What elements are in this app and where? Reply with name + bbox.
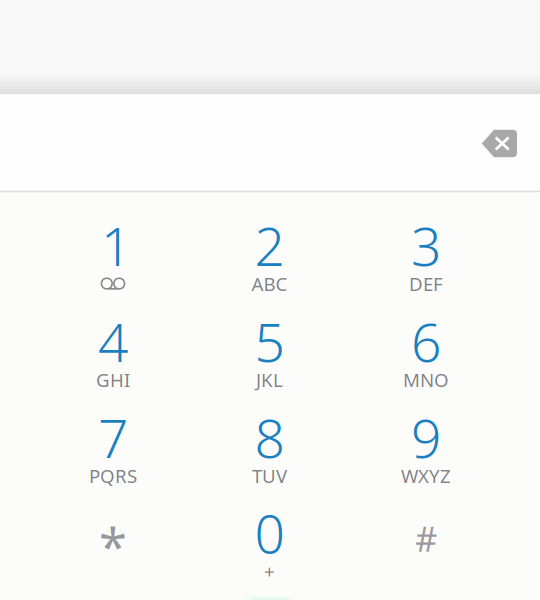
staticText: MNO bbox=[403, 367, 449, 392]
staticText: 8 bbox=[254, 402, 284, 473]
staticText: WXYZ bbox=[401, 463, 451, 488]
staticText: 3 bbox=[411, 210, 441, 281]
staticText: DEF bbox=[409, 271, 443, 296]
button[interactable]: Call bbox=[225, 592, 313, 600]
button[interactable]: 8 bbox=[191, 409, 347, 505]
staticText: JKL bbox=[256, 367, 283, 392]
staticText: GHI bbox=[96, 367, 130, 392]
button[interactable]: 4 bbox=[35, 313, 191, 409]
button[interactable]: 2 bbox=[191, 217, 347, 313]
button[interactable]: 1 bbox=[35, 217, 191, 313]
staticText: + bbox=[264, 559, 275, 584]
button[interactable]: Delete bbox=[460, 110, 538, 176]
staticText: 2 bbox=[254, 210, 284, 281]
staticText: * bbox=[99, 512, 127, 579]
staticText: 5 bbox=[254, 306, 284, 377]
button[interactable]: * bbox=[35, 505, 191, 600]
staticText: 6 bbox=[411, 306, 441, 377]
button[interactable]: 0 bbox=[191, 505, 347, 600]
button[interactable]: 3 bbox=[348, 217, 504, 313]
button[interactable]: 6 bbox=[348, 313, 504, 409]
staticText: 7 bbox=[98, 402, 128, 473]
staticText: PQRS bbox=[89, 463, 137, 488]
staticText: 9 bbox=[411, 402, 441, 473]
button[interactable]: 9 bbox=[348, 409, 504, 505]
staticText: ABC bbox=[251, 271, 287, 296]
staticText: # bbox=[415, 515, 437, 561]
staticText: 4 bbox=[98, 306, 128, 377]
staticText: 1 bbox=[101, 210, 131, 281]
button[interactable]: # bbox=[348, 505, 504, 600]
staticText: 0 bbox=[254, 497, 284, 568]
staticText: TUV bbox=[252, 463, 287, 488]
button[interactable]: 5 bbox=[191, 313, 347, 409]
button[interactable]: 7 bbox=[35, 409, 191, 505]
